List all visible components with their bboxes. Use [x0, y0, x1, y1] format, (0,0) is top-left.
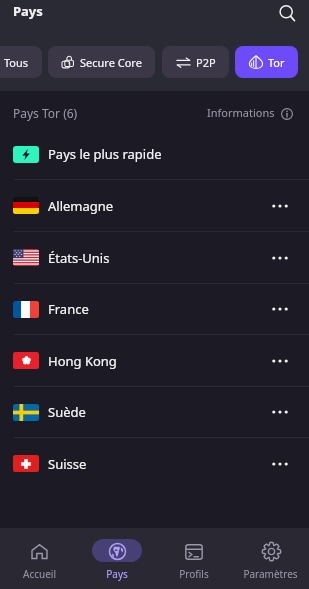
staticText: Tor [268, 55, 285, 70]
staticText: Pays le plus rapide [48, 145, 162, 163]
button[interactable]: Informations [207, 105, 293, 120]
button[interactable]: P2P [162, 46, 229, 78]
button[interactable]: Allemagne [0, 180, 309, 231]
button[interactable]: Suisse [0, 438, 309, 489]
staticText: Pays Tor (6) [13, 105, 78, 121]
button[interactable]: Accueil [0, 537, 78, 581]
staticText: Hong Kong [48, 352, 117, 370]
staticText: Profils [179, 567, 209, 581]
staticText: France [48, 300, 89, 318]
button[interactable]: Plus d'options [266, 347, 294, 375]
button[interactable]: Profils [155, 537, 232, 581]
button[interactable]: Plus d'options [266, 450, 294, 478]
button[interactable]: Plus d'options [266, 192, 294, 220]
staticText: Suisse [48, 455, 87, 473]
button[interactable]: Rechercher [275, 3, 299, 24]
button[interactable]: Tous [0, 46, 42, 78]
button[interactable]: Plus d'options [266, 295, 294, 323]
button[interactable]: Suède [0, 387, 309, 437]
button[interactable]: Pays le plus rapide [0, 129, 309, 179]
staticText: Paramètres [243, 567, 298, 581]
staticText: Informations [207, 105, 275, 120]
button[interactable]: Tor [235, 46, 298, 78]
button[interactable]: États-Unis [0, 232, 309, 283]
staticText: Secure Core [80, 55, 142, 70]
button[interactable]: Paramètres [232, 537, 309, 581]
button[interactable]: France [0, 284, 309, 334]
staticText: Pays [106, 567, 128, 581]
staticText: Allemagne [48, 197, 114, 215]
staticText: Pays [13, 2, 43, 20]
button[interactable]: Hong Kong [0, 335, 309, 386]
button[interactable]: Plus d'options [266, 244, 294, 272]
staticText: Tous [4, 55, 29, 70]
button[interactable]: Pays [78, 537, 155, 581]
staticText: Suède [48, 403, 86, 421]
button[interactable]: Secure Core [48, 46, 155, 78]
staticText: P2P [196, 55, 216, 70]
staticText: États-Unis [48, 249, 110, 267]
button[interactable]: Plus d'options [266, 398, 294, 426]
staticText: Accueil [23, 567, 56, 581]
